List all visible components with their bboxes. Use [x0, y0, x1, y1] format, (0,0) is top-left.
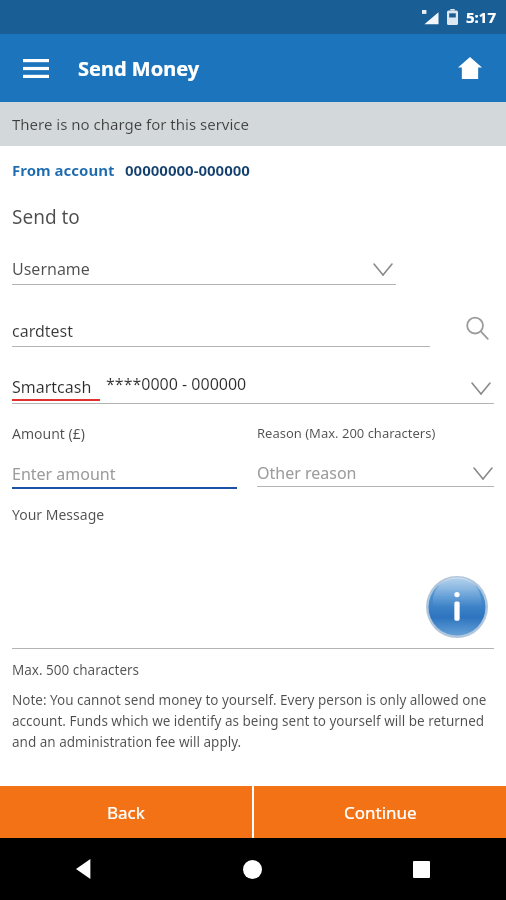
staticText: Reason (Max. 200 characters): [257, 424, 436, 442]
staticText: Back: [107, 801, 145, 824]
button[interactable]: Open navigation menu: [12, 44, 60, 92]
staticText: Smartcash: [12, 376, 92, 398]
staticText: cardtest: [12, 320, 74, 342]
staticText: There is no charge for this service: [12, 114, 250, 134]
staticText: Send to: [12, 204, 80, 230]
staticText: 00000000-000000: [125, 160, 250, 180]
button[interactable]: Smartcash: [12, 373, 494, 404]
button[interactable]: cardtest: [12, 316, 430, 347]
staticText: Enter amount: [12, 463, 116, 485]
button[interactable]: Continue: [254, 786, 506, 838]
staticText: ****0000 - 000000: [106, 373, 247, 395]
staticText: 5:17: [466, 7, 496, 27]
button[interactable]: Username: [12, 254, 396, 285]
staticText: From account: [12, 160, 115, 180]
staticText: Username: [12, 258, 90, 280]
button[interactable]: Back: [0, 786, 252, 838]
button[interactable]: Other reason: [257, 460, 494, 486]
button[interactable]: Home: [168, 838, 337, 900]
staticText: Amount (£): [12, 424, 85, 443]
button[interactable]: Recent apps: [337, 838, 506, 900]
button[interactable]: Home: [446, 44, 494, 92]
button[interactable]: Search: [460, 311, 494, 345]
staticText: Max. 500 characters: [12, 661, 140, 679]
staticText: Continue: [344, 801, 417, 824]
button[interactable]: Back: [0, 838, 168, 900]
button[interactable]: Information: [426, 576, 488, 638]
button[interactable]: From account: [12, 160, 250, 180]
staticText: Other reason: [257, 462, 357, 484]
button[interactable]: Enter amount: [12, 461, 237, 487]
staticText: Your Message: [12, 505, 105, 524]
staticText: Send Money: [78, 55, 200, 82]
staticText: Note: You cannot send money to yourself.…: [12, 691, 494, 751]
